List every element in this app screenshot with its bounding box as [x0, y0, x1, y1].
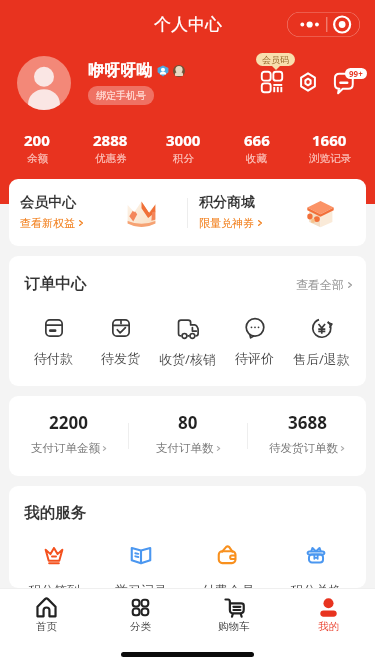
staticText: 1660: [312, 130, 347, 150]
staticText: 订单中心: [24, 274, 86, 294]
button[interactable]: 积分商城: [188, 179, 366, 246]
staticText: 查看新权益: [20, 216, 75, 230]
staticText: 666: [244, 130, 270, 150]
button[interactable]: 收货/核销: [154, 317, 221, 368]
button[interactable]: Messages: [331, 65, 365, 99]
button[interactable]: 绑定手机号: [88, 86, 154, 105]
staticText: 会员码: [262, 54, 289, 65]
staticText: 80: [178, 411, 198, 434]
staticText: 限量兑神券: [199, 216, 254, 230]
staticText: 会员中心: [20, 194, 76, 212]
staticText: 支付订单金额: [31, 441, 100, 455]
button[interactable]: 查看全部: [296, 277, 353, 292]
staticText: 待付款: [34, 350, 73, 366]
button[interactable]: 666: [220, 130, 293, 165]
staticText: 购物车: [218, 620, 250, 633]
staticText: 我的服务: [24, 503, 86, 523]
staticText: 咿呀呀呦: [88, 61, 152, 81]
staticText: 绑定手机号: [96, 89, 146, 102]
button[interactable]: 200: [0, 130, 74, 165]
button[interactable]: 学习记录: [97, 544, 184, 588]
staticText: 待发货: [101, 350, 140, 366]
button[interactable]: 我的: [281, 597, 375, 633]
staticText: 售后/退款: [293, 350, 350, 368]
button[interactable]: Member QR code: [255, 65, 289, 99]
button[interactable]: 3688: [248, 414, 366, 458]
button[interactable]: 积分签到: [10, 544, 97, 588]
button[interactable]: 2888: [74, 130, 147, 165]
button[interactable]: 待付款: [20, 317, 87, 366]
button[interactable]: 积分兑换: [272, 544, 360, 588]
staticText: 支付订单数: [156, 441, 214, 455]
staticText: 积分兑换: [290, 582, 342, 588]
staticText: 待发货订单数: [269, 441, 338, 455]
staticText: 余额: [27, 152, 48, 165]
staticText: 99+: [349, 68, 363, 79]
staticText: 2200: [49, 411, 88, 434]
button[interactable]: 分类: [93, 597, 187, 633]
button[interactable]: 售后/退款: [288, 317, 355, 368]
staticText: 积分: [173, 152, 194, 165]
staticText: 优惠券: [95, 152, 127, 165]
staticText: 分类: [130, 620, 151, 633]
button[interactable]: 80: [129, 414, 247, 458]
staticText: 3688: [288, 411, 327, 434]
button[interactable]: 付费会员: [184, 544, 272, 588]
staticText: 查看全部: [296, 277, 344, 292]
staticText: 我的: [318, 620, 339, 633]
staticText: 积分签到: [28, 582, 80, 588]
staticText: 学习记录: [115, 582, 167, 588]
button[interactable]: 1660: [293, 130, 366, 165]
staticText: 收货/核销: [159, 350, 216, 368]
button[interactable]: 首页: [0, 597, 93, 633]
staticText: 个人中心: [154, 14, 222, 35]
button[interactable]: Settings: [291, 65, 325, 99]
button[interactable]: Avatar: [17, 56, 71, 110]
staticText: 浏览记录: [309, 152, 351, 165]
button[interactable]: Mini program menu: [287, 12, 360, 37]
staticText: 积分商城: [199, 194, 255, 212]
staticText: 收藏: [246, 152, 267, 165]
staticText: 3000: [166, 130, 201, 150]
button[interactable]: 3000: [147, 130, 220, 165]
staticText: 2888: [93, 130, 128, 150]
button[interactable]: 待发货: [87, 317, 154, 366]
button[interactable]: 2200: [9, 414, 128, 458]
button[interactable]: 会员中心: [9, 179, 187, 246]
button[interactable]: 购物车: [187, 597, 281, 633]
staticText: 付费会员: [202, 582, 254, 588]
staticText: 待评价: [235, 350, 274, 366]
staticText: 200: [24, 130, 50, 150]
staticText: 首页: [36, 620, 57, 633]
button[interactable]: 待评价: [221, 317, 288, 366]
